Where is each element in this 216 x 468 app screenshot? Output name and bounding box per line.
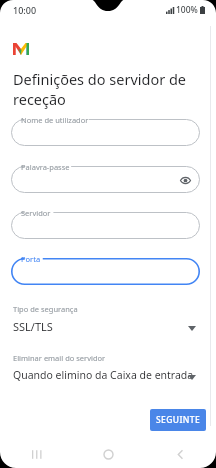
staticText: 100%: [176, 4, 198, 16]
button[interactable]: Retroceder: [144, 440, 216, 468]
staticText: receção: [13, 89, 66, 109]
button[interactable]: SEGUINTE: [150, 409, 206, 431]
staticText: SSL/TLS: [13, 319, 53, 334]
button[interactable]: Recentes: [0, 440, 72, 468]
button[interactable]: Servidor: [11, 212, 200, 239]
staticText: Nome de utilizador: [21, 115, 89, 125]
staticText: Servidor: [21, 208, 51, 218]
staticText: Definições do servidor de: [13, 69, 187, 89]
staticText: Palavra-passe: [21, 162, 70, 172]
button[interactable]: Palavra-passe: [11, 166, 200, 193]
staticText: Porta: [21, 254, 41, 264]
button[interactable]: Eliminar email do servidor: [0, 352, 206, 388]
button[interactable]: Nome de utilizador: [11, 119, 200, 146]
staticText: Tipo de segurança: [13, 304, 78, 314]
button[interactable]: Tipo de segurança: [0, 303, 206, 339]
button[interactable]: Mostrar palavra-passe: [178, 173, 192, 187]
staticText: Quando elimino da Caixa de entrada: [13, 368, 194, 382]
staticText: Eliminar email do servidor: [13, 353, 106, 363]
staticText: SEGUINTE: [156, 414, 201, 426]
button[interactable]: Porta: [11, 258, 200, 285]
button[interactable]: Início: [72, 440, 144, 468]
staticText: 10:00: [13, 4, 37, 16]
